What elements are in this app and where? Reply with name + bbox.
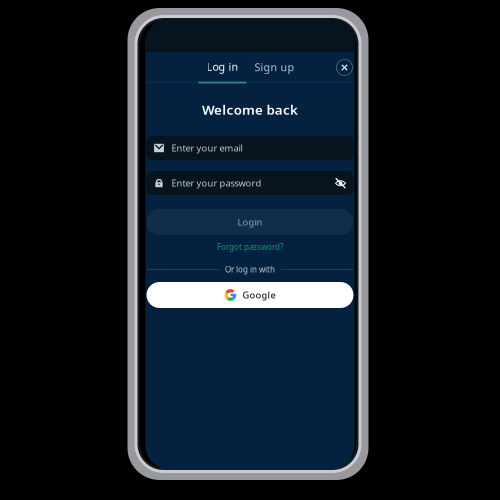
- staticText: Google: [242, 289, 275, 301]
- staticText: Log in: [206, 59, 238, 74]
- button[interactable]: Google: [146, 282, 353, 308]
- button[interactable]: Log in: [198, 52, 246, 83]
- staticText: Enter your email: [171, 142, 242, 154]
- staticText: Welcome back: [202, 101, 298, 118]
- button[interactable]: Forgot password?: [217, 242, 283, 252]
- button[interactable]: Show password: [334, 177, 346, 189]
- button[interactable]: Sign up: [250, 52, 298, 83]
- staticText: Forgot password?: [217, 242, 283, 252]
- button[interactable]: Close: [336, 59, 352, 75]
- staticText: Sign up: [254, 60, 294, 74]
- button[interactable]: Login: [146, 209, 353, 235]
- staticText: Login: [237, 216, 262, 228]
- staticText: Enter your password: [171, 177, 261, 189]
- staticText: Or log in with: [225, 264, 275, 275]
